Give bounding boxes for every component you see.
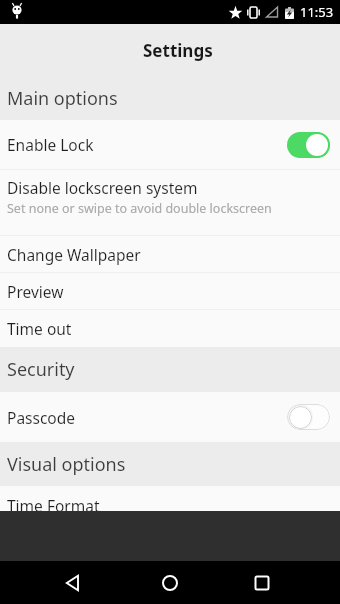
staticText: Main options	[7, 86, 118, 111]
button[interactable]: Preview	[0, 273, 340, 309]
button[interactable]	[287, 132, 330, 158]
staticText: Time Format	[7, 495, 100, 511]
button[interactable]: Time out	[0, 310, 340, 347]
button[interactable]: Passcode	[0, 392, 340, 442]
button[interactable]	[156, 569, 184, 597]
staticText: 11:53	[300, 3, 334, 21]
staticText: Set none or swipe to avoid double locksc…	[7, 200, 272, 217]
button[interactable]	[287, 404, 330, 430]
staticText: Disable lockscreen system	[7, 177, 198, 198]
staticText: Passcode	[7, 407, 76, 428]
button[interactable]	[59, 569, 87, 597]
button[interactable]	[248, 569, 276, 597]
button[interactable]: Disable lockscreen system	[0, 170, 340, 235]
staticText: Time out	[7, 318, 72, 339]
staticText: Settings	[143, 39, 213, 62]
button[interactable]: Enable Lock	[0, 120, 340, 169]
staticText: Visual options	[7, 452, 126, 477]
button[interactable]: Time Format	[0, 486, 340, 511]
staticText: Change Wallpaper	[7, 244, 141, 265]
staticText: Preview	[7, 281, 64, 302]
button[interactable]: Change Wallpaper	[0, 236, 340, 272]
staticText: Enable Lock	[7, 134, 94, 155]
staticText: Security	[7, 357, 75, 382]
